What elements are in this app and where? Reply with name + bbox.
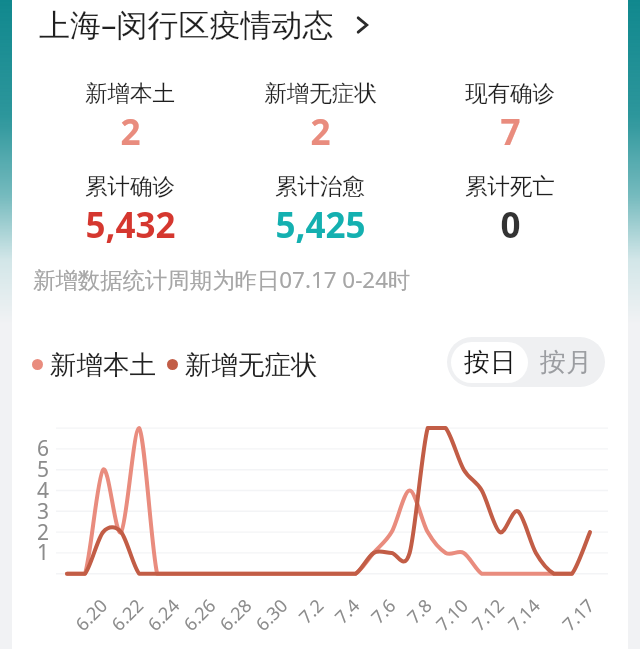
button[interactable]: 现有确诊	[415, 69, 605, 156]
staticText: 5,432	[85, 201, 176, 249]
other: 查看详情	[350, 13, 374, 37]
staticText: 累计确诊	[85, 172, 175, 200]
button[interactable]: 累计确诊	[35, 162, 225, 249]
staticText: 上海–闵行区疫情动态	[39, 3, 334, 45]
staticText: 新增无症状	[185, 348, 318, 381]
staticText: 新增本土	[85, 79, 175, 107]
staticText: 新增无症状	[264, 79, 377, 107]
button[interactable]: 新增无症状	[167, 348, 300, 382]
button[interactable]: 累计治愈	[225, 162, 415, 249]
staticText: 现有确诊	[465, 79, 555, 107]
staticText: 新增数据统计周期为昨日07.17 0-24时	[33, 264, 411, 295]
button[interactable]: 按月	[526, 337, 605, 387]
staticText: 7	[500, 108, 521, 156]
button[interactable]: 上海–闵行区疫情动态	[26, 0, 394, 50]
staticText: 按日	[464, 346, 516, 379]
button[interactable]: 新增本土	[32, 348, 138, 382]
button[interactable]: 新增无症状	[225, 69, 415, 156]
staticText: 累计死亡	[465, 172, 555, 200]
button[interactable]: 新增本土	[35, 69, 225, 156]
button[interactable]: 累计死亡	[415, 162, 605, 249]
button[interactable]: 按日	[451, 342, 528, 383]
staticText: 累计治愈	[275, 172, 365, 200]
staticText: 2	[310, 108, 331, 156]
staticText: 2	[120, 108, 141, 156]
staticText: 按月	[540, 346, 592, 379]
staticText: 5,425	[275, 201, 366, 249]
staticText: 新增本土	[50, 348, 156, 381]
staticText: 0	[500, 201, 521, 249]
